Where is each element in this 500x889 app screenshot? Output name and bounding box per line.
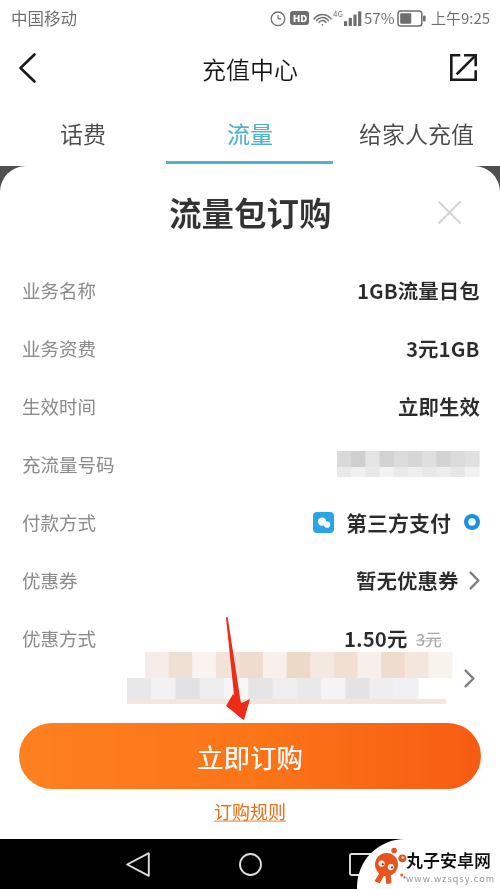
button[interactable]: 充流量号码	[0, 435, 500, 493]
button[interactable]: Home	[226, 840, 274, 888]
staticText: 充流量号码	[22, 451, 115, 478]
staticText: 优惠方式	[22, 625, 97, 652]
staticText: 业务资费	[22, 335, 97, 362]
button[interactable]: Back	[0, 36, 56, 100]
staticText: 第三方支付	[346, 507, 451, 537]
button[interactable]: Back	[114, 840, 162, 888]
button[interactable]: Close	[434, 197, 464, 227]
staticText: 丸子安卓网	[406, 847, 491, 872]
button[interactable]: 订购规则	[214, 798, 286, 824]
staticText: 57%	[364, 7, 395, 29]
staticText: 流量	[227, 116, 273, 149]
staticText: 生效时间	[22, 393, 97, 420]
staticText: 付款方式	[22, 509, 97, 536]
button[interactable]: 话费	[0, 100, 166, 166]
button[interactable]: 生效时间	[0, 377, 500, 435]
staticText: 3元	[416, 627, 442, 651]
staticText: 流量包订购	[169, 188, 332, 235]
button[interactable]: 业务名称	[0, 261, 500, 319]
button[interactable]: 流量	[166, 100, 333, 166]
button[interactable]: 优惠方式	[0, 609, 500, 667]
button[interactable]: Share	[444, 36, 500, 100]
staticText: 暂无优惠券	[356, 565, 459, 595]
staticText: 订购规则	[214, 798, 286, 824]
button[interactable]: 给家人充值	[333, 100, 500, 166]
button[interactable]: 业务资费	[0, 319, 500, 377]
staticText: 话费	[60, 116, 106, 149]
staticText: 上午9:25	[431, 7, 491, 29]
staticText: 立即生效	[398, 391, 480, 421]
staticText: 优惠券	[22, 567, 78, 594]
staticText: 1GB流量日包	[357, 275, 480, 305]
button[interactable]: 立即订购	[19, 723, 481, 789]
staticText: 中国移动	[11, 6, 77, 30]
staticText: www.wzsqsy.com	[406, 872, 496, 885]
staticText: 3元1GB	[406, 333, 480, 363]
staticText: HD	[293, 11, 307, 25]
staticText: 立即订购	[197, 737, 303, 775]
staticText: 给家人充值	[359, 116, 474, 149]
button[interactable]: Recents	[338, 840, 386, 888]
button[interactable]: 优惠券	[0, 551, 500, 609]
staticText: 1.50元	[344, 623, 408, 653]
staticText: 充值中心	[202, 51, 298, 86]
staticText: 业务名称	[22, 277, 97, 304]
staticText: 4G	[333, 8, 343, 20]
button[interactable]: 付款方式	[0, 493, 500, 551]
